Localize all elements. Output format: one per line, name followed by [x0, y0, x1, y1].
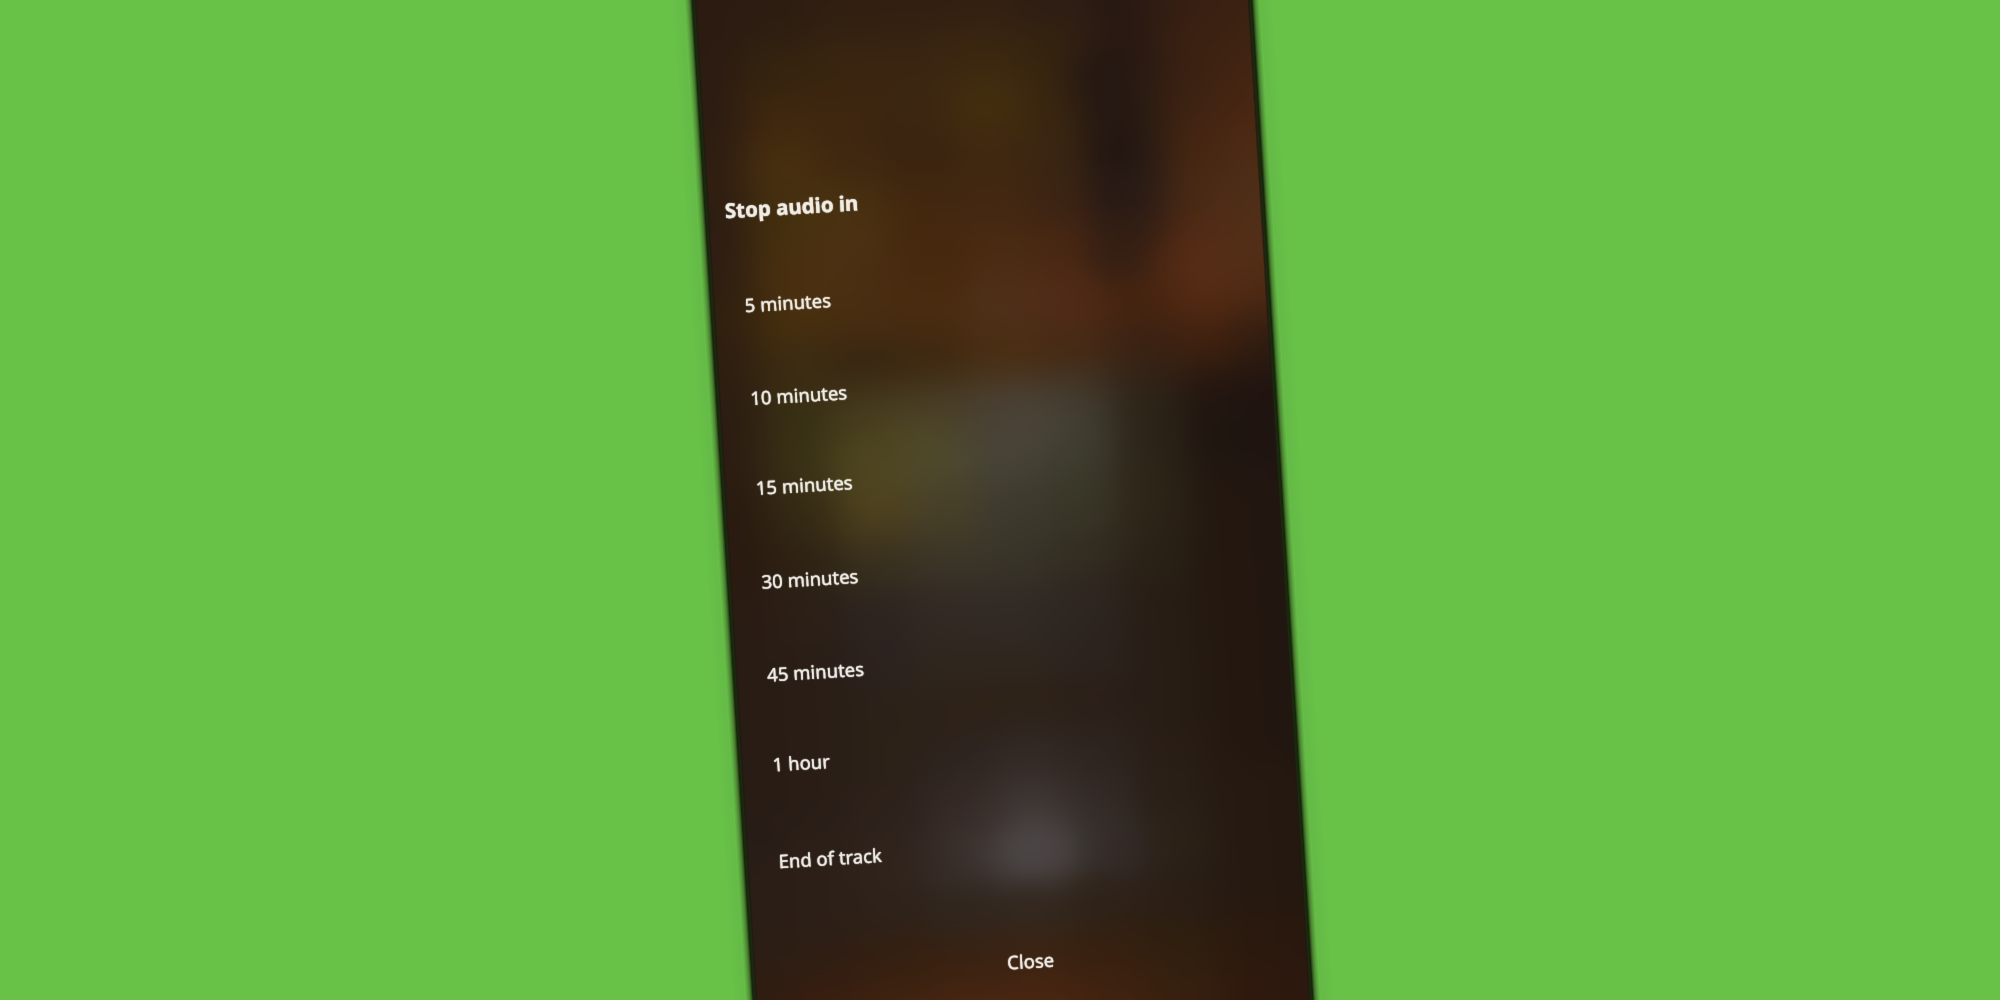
staticText: Stop audio in	[724, 188, 859, 224]
staticText: 10 minutes	[750, 380, 848, 411]
staticText: 10 minutes	[749, 378, 848, 409]
staticText: 15 minutes	[755, 470, 853, 501]
staticText: End of track	[778, 841, 883, 872]
staticText: 1 hour	[772, 748, 831, 776]
staticText: 45 minutes	[766, 656, 865, 687]
staticText: End of track	[779, 842, 884, 873]
staticText: 45 minutes	[765, 656, 864, 687]
staticText: 45 minutes	[766, 655, 865, 686]
staticText: 45 minutes	[767, 656, 866, 687]
staticText: Stop audio in	[725, 188, 860, 224]
staticText: 30 minutes	[761, 564, 859, 595]
staticText: 5 minutes	[744, 287, 832, 317]
staticText: 30 minutes	[761, 562, 859, 593]
staticText: 30 minutes	[761, 563, 859, 594]
staticText: 1 hour	[772, 749, 831, 777]
button[interactable]: 10 minutes	[713, 321, 1277, 435]
staticText: 15 minutes	[755, 469, 853, 500]
staticText: 15 minutes	[754, 469, 852, 500]
staticText: 15 minutes	[756, 469, 854, 500]
button[interactable]: End of track	[741, 784, 1306, 898]
staticText: Close	[1006, 948, 1055, 975]
staticText: End of track	[778, 843, 883, 874]
staticText: 15 minutes	[755, 468, 853, 499]
staticText: Stop audio in	[724, 189, 860, 225]
staticText: 5 minutes	[744, 288, 832, 318]
button[interactable]: Close	[748, 899, 1313, 1000]
staticText: Close	[1005, 947, 1054, 975]
button[interactable]: 1 hour	[735, 687, 1300, 801]
staticText: Stop audio in	[723, 188, 858, 224]
button[interactable]: 5 minutes	[707, 228, 1272, 342]
staticText: End of track	[777, 842, 882, 873]
staticText: 1 hour	[771, 748, 830, 776]
staticText: 5 minutes	[744, 286, 832, 316]
staticText: 45 minutes	[766, 657, 865, 688]
button[interactable]: 15 minutes	[718, 411, 1283, 525]
staticText: Stop audio in	[724, 187, 859, 223]
button[interactable]: 30 minutes	[724, 505, 1289, 619]
button[interactable]: Stop audio in	[701, 132, 1266, 246]
staticText: Close	[1007, 947, 1056, 974]
staticText: 30 minutes	[760, 563, 858, 594]
staticText: Close	[1006, 947, 1055, 974]
staticText: 10 minutes	[749, 379, 848, 410]
staticText: 1 hour	[772, 747, 831, 775]
staticText: 10 minutes	[748, 379, 847, 410]
staticText: 5 minutes	[743, 287, 831, 317]
staticText: 10 minutes	[750, 379, 849, 410]
staticText: 5 minutes	[745, 287, 833, 317]
staticText: Close	[1006, 946, 1055, 973]
staticText: 1 hour	[773, 748, 832, 776]
button[interactable]: 45 minutes	[729, 598, 1294, 712]
staticText: End of track	[778, 842, 883, 873]
staticText: 30 minutes	[762, 563, 860, 594]
